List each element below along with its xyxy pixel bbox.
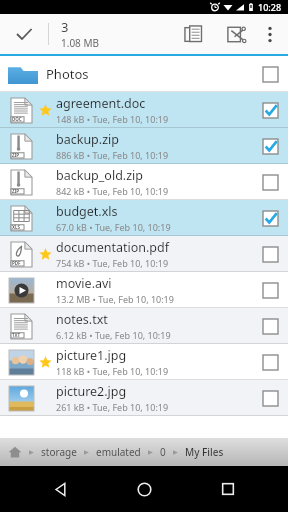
staticText: 118 kB • Tue, Feb 10, 10:19 bbox=[56, 365, 169, 377]
button[interactable]: Home bbox=[121, 466, 167, 512]
staticText: storage bbox=[41, 445, 77, 459]
staticText: picture1.jpg bbox=[56, 347, 127, 364]
button[interactable]: TXT bbox=[0, 308, 288, 344]
staticText: documentation.pdf bbox=[56, 239, 170, 256]
staticText: emulated bbox=[96, 445, 141, 459]
staticText: 13.2 MB • Tue, Feb 10, 10:19 bbox=[56, 293, 174, 305]
staticText: 6.12 kB • Tue, Feb 10, 10:19 bbox=[56, 329, 171, 341]
staticText: 886 kB • Tue, Feb 10, 10:19 bbox=[56, 149, 169, 161]
staticText: 0 bbox=[160, 445, 166, 459]
button[interactable]: Back bbox=[38, 466, 84, 512]
staticText: XLS bbox=[12, 224, 21, 230]
button[interactable]: Copy bbox=[172, 14, 214, 54]
staticText: 10:28 bbox=[258, 1, 282, 13]
staticText: TXT bbox=[12, 332, 21, 338]
staticText: ZIP bbox=[12, 188, 20, 194]
staticText: 148 kB • Tue, Feb 10, 10:19 bbox=[56, 113, 169, 125]
staticText: PDF bbox=[12, 260, 21, 266]
button[interactable]: movie.avi bbox=[0, 272, 288, 308]
button[interactable]: DOC bbox=[0, 92, 288, 128]
staticText: 67.0 kB • Tue, Feb 10, 10:19 bbox=[56, 221, 171, 233]
staticText: picture2.jpg bbox=[56, 383, 127, 400]
staticText: 3 bbox=[61, 18, 69, 36]
button[interactable]: ZIP bbox=[0, 164, 288, 200]
button[interactable]: storage bbox=[0, 438, 288, 466]
button[interactable]: picture2.jpg bbox=[0, 380, 288, 416]
staticText: notes.txt bbox=[56, 311, 108, 328]
button[interactable]: Recents bbox=[205, 466, 251, 512]
staticText: movie.avi bbox=[56, 275, 112, 292]
staticText: 261 kB • Tue, Feb 10, 10:19 bbox=[56, 401, 169, 413]
button[interactable]: ZIP bbox=[0, 128, 288, 164]
staticText: backup.zip bbox=[56, 131, 119, 148]
staticText: DOC bbox=[12, 116, 22, 122]
staticText: agreement.doc bbox=[56, 95, 146, 112]
staticText: Photos bbox=[46, 65, 89, 83]
staticText: 754 kB • Tue, Feb 10, 10:19 bbox=[56, 257, 169, 269]
button[interactable]: picture1.jpg bbox=[0, 344, 288, 380]
button[interactable]: PDF bbox=[0, 236, 288, 272]
staticText: 842 kB • Tue, Feb 10, 10:19 bbox=[56, 185, 169, 197]
staticText: ZIP bbox=[12, 152, 20, 158]
staticText: My Files bbox=[185, 445, 224, 459]
button[interactable]: Photos bbox=[0, 56, 288, 92]
staticText: backup_old.zip bbox=[56, 167, 143, 184]
button[interactable]: XLS bbox=[0, 200, 288, 236]
button[interactable]: More options bbox=[256, 14, 284, 54]
button[interactable]: Select all bbox=[0, 14, 48, 54]
staticText: budget.xls bbox=[56, 203, 118, 220]
button[interactable]: Cut bbox=[214, 14, 256, 54]
staticText: 1.08 MB bbox=[61, 36, 100, 50]
